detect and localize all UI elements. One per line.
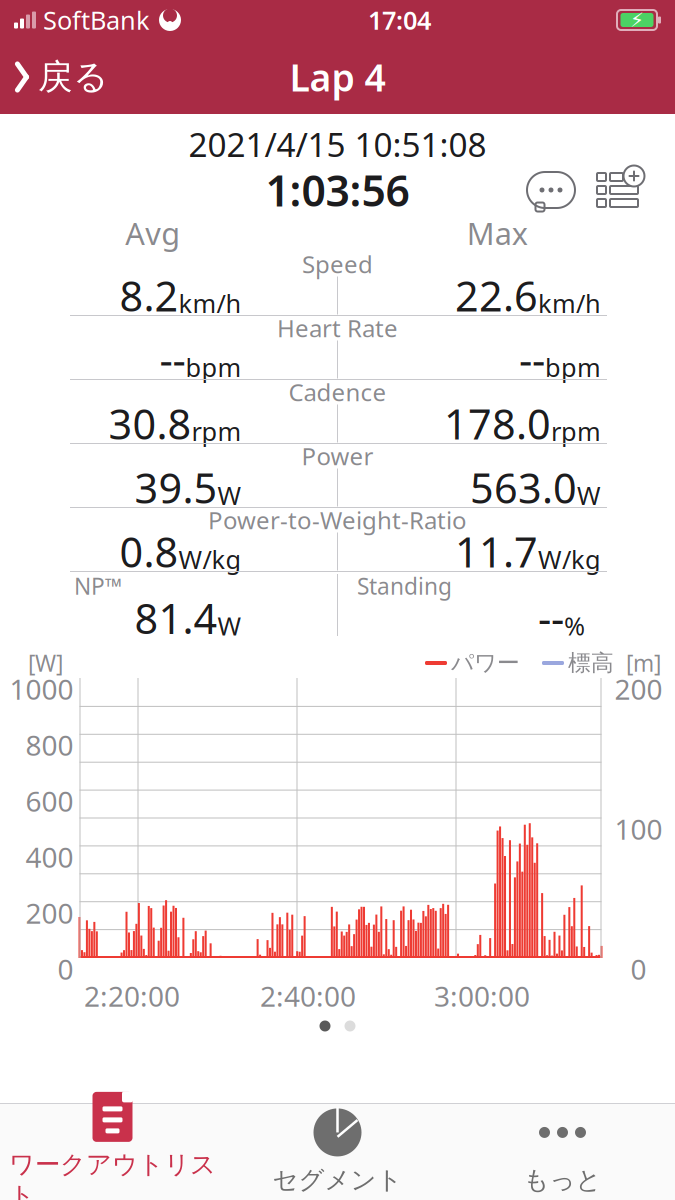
staticText: -- [159,332,185,387]
staticText: 戻る [38,56,108,98]
staticText: W [577,478,601,512]
button[interactable]: 戻る [0,49,120,105]
button[interactable]: コメント [517,167,585,213]
staticText: km/h [178,286,241,320]
staticText: Power-to-Weight-Ratio [208,504,467,536]
button[interactable]: もっと [450,1098,675,1200]
staticText: % [564,609,585,642]
staticText: Speed [302,248,373,280]
staticText: 2:40:00 [260,977,356,1015]
staticText: 3:00:00 [434,977,530,1015]
staticText: Standing [357,571,452,601]
button[interactable]: リストに追加 [585,166,653,214]
staticText: bpm [545,350,601,384]
staticText: 600 [25,782,73,820]
staticText: Avg [125,213,180,253]
button[interactable]: ワークアウトリスト [0,1083,225,1200]
staticText: -- [519,332,545,387]
staticText: 2:20:00 [84,977,180,1015]
staticText: 0 [630,950,646,988]
staticText: 800 [25,726,73,764]
staticText: パワー [451,649,520,677]
staticText: W/kg [538,542,601,576]
staticText: 22.6 [455,268,538,323]
staticText: NP™ [74,571,123,601]
staticText: 0 [57,950,73,988]
button[interactable]: セグメント [225,1098,450,1200]
staticText: Max [467,213,528,253]
staticText: ワークアウトリスト [9,1149,216,1200]
staticText: 0.8 [119,524,178,579]
staticText: 200 [614,670,662,708]
staticText: 200 [25,894,73,932]
staticText: 1000 [9,670,73,708]
staticText: 563.0 [470,460,577,515]
staticText: 100 [614,810,662,848]
staticText: 8.2 [119,268,178,323]
staticText: [W] [28,648,63,678]
staticText: bpm [185,350,241,384]
staticText: 30.8 [108,396,191,451]
staticText: Heart Rate [277,312,398,344]
staticText: [m] [626,648,661,678]
staticText: 1:03:56 [265,162,409,218]
staticText: 2021/4/15 10:51:08 [188,122,486,166]
staticText: km/h [538,286,601,320]
staticText: 標高 [568,649,614,677]
staticText: 11.7 [455,524,538,579]
staticText: rpm [191,414,241,448]
staticText: セグメント [272,1164,402,1195]
staticText: 17:04 [368,3,431,37]
staticText: 39.5 [134,460,217,515]
staticText: rpm [551,414,601,448]
staticText: SoftBank [43,3,150,37]
staticText: Lap 4 [289,52,385,102]
staticText: Cadence [288,376,386,408]
staticText: 178.0 [444,396,551,451]
staticText: もっと [523,1164,601,1195]
staticText: W [217,609,241,642]
staticText: W [217,478,241,512]
staticText: ⚡︎ [630,9,644,31]
staticText: W/kg [178,542,241,576]
staticText: Power [301,440,373,472]
staticText: 81.4 [134,591,217,645]
staticText: 400 [25,838,73,876]
staticText: -- [538,591,564,645]
